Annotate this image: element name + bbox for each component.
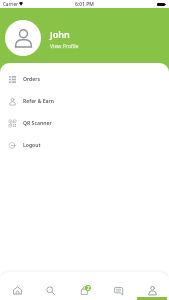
button[interactable]: QR Scanner <box>0 112 169 134</box>
staticText: Logout <box>23 142 41 149</box>
button[interactable]: Profile photo <box>5 20 41 56</box>
button[interactable]: Cart <box>67 272 101 300</box>
staticText: John <box>50 28 70 40</box>
button[interactable]: Messages <box>101 272 135 300</box>
button[interactable]: Refer & Earn <box>0 90 169 112</box>
button[interactable]: Home <box>0 272 33 300</box>
staticText: QR Scanner <box>23 120 52 127</box>
staticText: Refer & Earn <box>23 98 55 105</box>
staticText: Orders <box>23 76 41 83</box>
staticText: 2 <box>87 285 90 291</box>
button[interactable]: Logout <box>0 134 169 156</box>
button[interactable]: Account <box>135 272 169 300</box>
button[interactable]: Orders <box>0 68 169 90</box>
button[interactable]: Search <box>33 272 67 300</box>
staticText: Carrier <box>3 1 18 7</box>
staticText: 6:01 PM <box>75 1 94 8</box>
button[interactable]: View Profile <box>50 42 79 49</box>
